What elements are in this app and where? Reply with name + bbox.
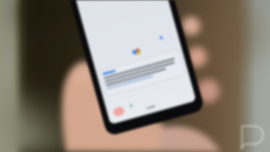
button[interactable]: Call screening: [0, 0, 270, 152]
